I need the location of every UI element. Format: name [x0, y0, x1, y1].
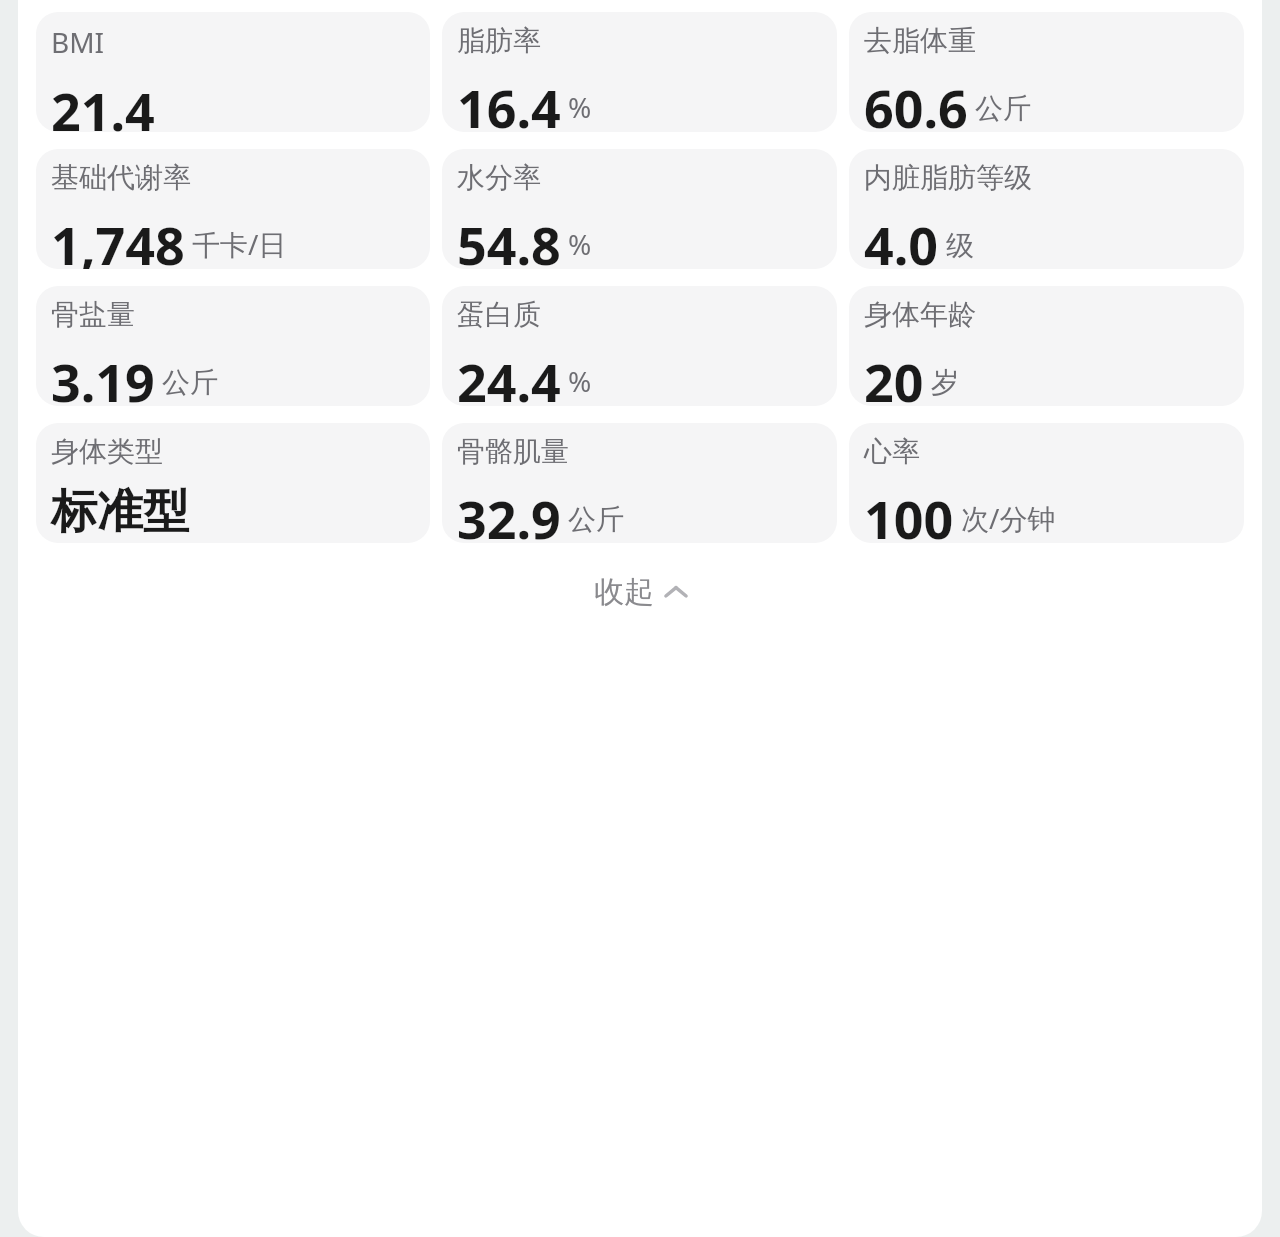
- staticText: 54.8: [457, 209, 561, 269]
- staticText: %: [568, 362, 592, 400]
- staticText: 水分率: [457, 160, 541, 195]
- staticText: 基础代谢率: [51, 160, 191, 195]
- button[interactable]: 基础代谢率: [36, 149, 430, 269]
- staticText: 公斤: [162, 365, 218, 400]
- button[interactable]: 去脂体重: [849, 12, 1244, 132]
- staticText: 心率: [864, 434, 920, 469]
- button[interactable]: 骨骼肌量: [442, 423, 837, 543]
- staticText: 千卡/日: [192, 225, 287, 263]
- staticText: 骨骼肌量: [457, 434, 569, 469]
- staticText: 收起: [594, 573, 654, 611]
- staticText: 次/分钟: [961, 499, 1056, 537]
- other: 收起: [665, 581, 687, 603]
- staticText: 4.0: [864, 209, 939, 269]
- staticText: 岁: [931, 365, 959, 400]
- staticText: 级: [946, 228, 974, 263]
- staticText: 16.4: [457, 72, 561, 132]
- staticText: 20: [864, 346, 924, 406]
- staticText: 骨盐量: [51, 297, 135, 332]
- staticText: 21.4: [51, 75, 155, 132]
- button[interactable]: 水分率: [442, 149, 837, 269]
- staticText: 蛋白质: [457, 297, 541, 332]
- staticText: 32.9: [457, 483, 561, 543]
- staticText: 身体年龄: [864, 297, 976, 332]
- button[interactable]: BMI: [36, 12, 430, 132]
- staticText: 60.6: [864, 72, 968, 132]
- button[interactable]: 收起: [580, 567, 701, 617]
- staticText: 公斤: [975, 91, 1031, 126]
- button[interactable]: 身体年龄: [849, 286, 1244, 406]
- staticText: 24.4: [457, 346, 561, 406]
- staticText: 身体类型: [51, 434, 163, 469]
- staticText: BMI: [51, 23, 105, 61]
- staticText: %: [568, 225, 592, 263]
- staticText: 3.19: [51, 346, 155, 406]
- button[interactable]: 蛋白质: [442, 286, 837, 406]
- button[interactable]: 内脏脂肪等级: [849, 149, 1244, 269]
- button[interactable]: 骨盐量: [36, 286, 430, 406]
- staticText: 标准型: [51, 483, 189, 541]
- staticText: 100: [864, 483, 954, 543]
- staticText: 内脏脂肪等级: [864, 160, 1032, 195]
- staticText: 1,748: [51, 209, 185, 269]
- button[interactable]: 身体类型: [36, 423, 430, 543]
- button[interactable]: 心率: [849, 423, 1244, 543]
- staticText: 公斤: [568, 502, 624, 537]
- button[interactable]: 脂肪率: [442, 12, 837, 132]
- staticText: %: [568, 88, 592, 126]
- staticText: 去脂体重: [864, 23, 976, 58]
- staticText: 脂肪率: [457, 23, 541, 58]
